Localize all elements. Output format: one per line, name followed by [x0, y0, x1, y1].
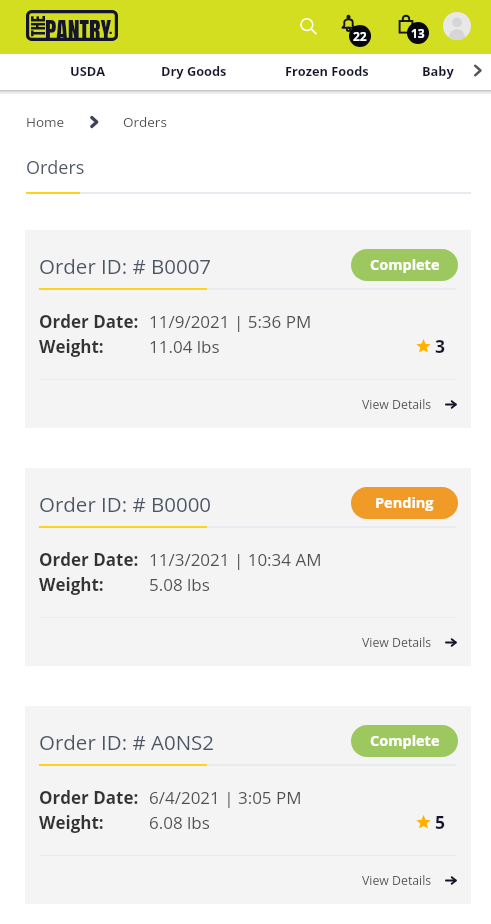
button[interactable]: The Pantry home — [26, 10, 118, 41]
button[interactable]: View Details — [362, 634, 457, 651]
staticText: Weight: — [39, 573, 104, 596]
staticText: Complete — [370, 255, 440, 275]
button[interactable]: Order ID: # A0NS2 — [25, 706, 471, 904]
staticText: Order Date: — [39, 310, 139, 333]
staticText: 13 — [411, 25, 425, 41]
staticText: Baby — [422, 62, 454, 79]
button[interactable]: View Details — [362, 872, 457, 889]
staticText: 5 — [435, 810, 446, 834]
staticText: 11.04 lbs — [149, 335, 220, 358]
button[interactable]: USDA — [57, 50, 119, 91]
button[interactable]: Notifications — [337, 9, 375, 49]
staticText: Frozen Foods — [285, 62, 369, 79]
staticText: THE — [25, 15, 49, 36]
staticText: 6/4/2021 | 3:05 PM — [149, 786, 302, 809]
button[interactable]: Cart — [394, 6, 432, 46]
staticText: 3 — [435, 334, 446, 358]
staticText: Order ID: # A0NS2 — [39, 728, 215, 756]
staticText: Weight: — [39, 335, 104, 358]
staticText: Order Date: — [39, 548, 139, 571]
staticText: Order ID: # B0000 — [39, 490, 212, 518]
staticText: Orders — [26, 155, 85, 180]
button[interactable]: Order ID: # B0007 — [25, 230, 471, 428]
button[interactable]: Order ID: # B0000 — [25, 468, 471, 666]
staticText: 11/3/2021 | 10:34 AM — [149, 548, 322, 571]
button[interactable]: Frozen Foods — [269, 50, 384, 91]
staticText: Complete — [370, 731, 440, 751]
staticText: View Details — [362, 872, 432, 889]
staticText: USDA — [70, 62, 106, 79]
button[interactable]: Home — [26, 113, 65, 131]
button[interactable]: Search — [294, 12, 322, 40]
staticText: Pending — [375, 493, 434, 513]
button[interactable]: Account — [443, 12, 471, 40]
staticText: 11/9/2021 | 5:36 PM — [149, 310, 312, 333]
staticText: Order Date: — [39, 786, 139, 809]
staticText: Order ID: # B0007 — [39, 252, 212, 280]
staticText: PANTRY — [45, 13, 112, 44]
staticText: Orders — [123, 113, 167, 131]
staticText: View Details — [362, 634, 432, 651]
button[interactable]: Dry Goods — [148, 50, 240, 91]
button[interactable]: Complete — [351, 725, 458, 757]
button[interactable]: View Details — [362, 396, 457, 413]
staticText: 6.08 lbs — [149, 811, 210, 834]
staticText: · — [109, 24, 112, 42]
staticText: View Details — [362, 396, 432, 413]
staticText: 5.08 lbs — [149, 573, 210, 596]
button[interactable]: Baby — [413, 50, 463, 91]
staticText: Dry Goods — [161, 62, 227, 79]
staticText: 22 — [353, 28, 367, 44]
staticText: Weight: — [39, 811, 104, 834]
button[interactable]: Pending — [351, 487, 458, 519]
button[interactable]: More categories — [463, 50, 491, 91]
button[interactable]: Complete — [351, 249, 458, 281]
